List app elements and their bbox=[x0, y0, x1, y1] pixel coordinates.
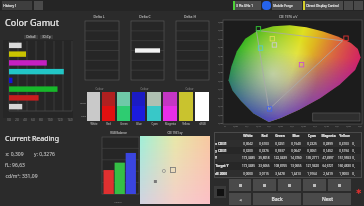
staticText: 0,60 bbox=[218, 20, 223, 23]
staticText: White bbox=[90, 122, 98, 126]
staticText: 0,55 bbox=[218, 28, 223, 31]
staticText: Colour bbox=[95, 87, 104, 91]
staticText: Magenta bbox=[321, 134, 336, 138]
button[interactable]: Tool 0 bbox=[229, 179, 251, 191]
staticText: 0 bbox=[224, 124, 226, 127]
staticText: 1,4413 bbox=[291, 172, 301, 176]
staticText: 0,4103 bbox=[339, 142, 349, 146]
button[interactable]: sRGB bbox=[195, 92, 209, 126]
button[interactable]: Mobile Forge bbox=[272, 1, 302, 10]
staticText: 0,1540 bbox=[291, 142, 301, 146]
staticText: 33,6065 bbox=[258, 164, 270, 168]
staticText: Colour bbox=[140, 87, 149, 91]
staticText: 0,30 bbox=[218, 70, 223, 73]
staticText: Next bbox=[322, 196, 333, 203]
staticText: ◀ bbox=[239, 198, 242, 201]
button[interactable]: Stop bbox=[214, 186, 226, 198]
button[interactable]: Calibrate bbox=[262, 1, 271, 10]
button[interactable]: Blue bbox=[132, 92, 145, 126]
button[interactable]: Tool 3 bbox=[303, 179, 326, 191]
button[interactable]: Next bbox=[303, 193, 351, 205]
staticText: Targ bbox=[81, 114, 86, 117]
button[interactable]: Tool 2 bbox=[278, 179, 301, 191]
staticText: 35,8018 bbox=[258, 156, 270, 160]
staticText: 12.0 bbox=[57, 118, 63, 122]
button[interactable]: Direct Display Control bbox=[303, 1, 343, 10]
staticText: y: 0,3276 bbox=[34, 151, 55, 158]
staticText: 0, bbox=[352, 156, 355, 160]
staticText: 0,1 bbox=[245, 124, 249, 127]
staticText: 0,4 bbox=[313, 124, 317, 127]
staticText: 64,6721 bbox=[322, 164, 334, 168]
staticText: 0,25 bbox=[218, 79, 223, 82]
staticText: 0,3 bbox=[290, 124, 294, 127]
staticText: 0,2325 bbox=[307, 142, 317, 146]
button[interactable]: History 1 bbox=[2, 1, 32, 10]
staticText: 6.0 bbox=[31, 118, 35, 122]
staticText: Delta H bbox=[184, 14, 196, 19]
staticText: Cyan bbox=[308, 134, 316, 138]
button[interactable]: Previous bbox=[229, 193, 251, 205]
staticText: 0,45 bbox=[218, 45, 223, 48]
staticText: 0,3061 bbox=[307, 149, 317, 153]
staticText: Delta C bbox=[139, 14, 151, 19]
button[interactable]: 3 Pts UHz 1 bbox=[233, 1, 261, 10]
staticText: 0,3200 bbox=[243, 149, 253, 153]
staticText: 0,35 bbox=[301, 124, 306, 127]
staticText: CIE 1931 xy bbox=[167, 131, 183, 135]
staticText: 0, bbox=[352, 142, 355, 146]
button[interactable]: Red bbox=[102, 92, 115, 126]
staticText: Green bbox=[120, 122, 128, 126]
staticText: 8.0 bbox=[39, 118, 43, 122]
staticText: 0.0 bbox=[7, 118, 11, 122]
button[interactable]: Tool 1 bbox=[253, 179, 276, 191]
staticText: 0,25 bbox=[278, 124, 283, 127]
staticText: 1,9164 bbox=[307, 172, 317, 176]
button[interactable]: Yellow bbox=[179, 92, 193, 126]
staticText: 0,6103 bbox=[259, 142, 269, 146]
staticText: White bbox=[243, 134, 253, 138]
staticText: 0,05 bbox=[233, 124, 238, 127]
staticText: Target Y bbox=[215, 164, 229, 168]
staticText: 160,4830 bbox=[338, 164, 351, 168]
staticText: ✱ bbox=[356, 188, 362, 196]
staticText: y CIE31 bbox=[215, 149, 227, 153]
staticText: 121,9420 bbox=[306, 164, 319, 168]
staticText: Mobile Forge bbox=[273, 4, 293, 8]
staticText: Delta L bbox=[93, 14, 105, 19]
staticText: x CIE31 bbox=[215, 142, 227, 146]
staticText: Back bbox=[271, 196, 283, 203]
staticText: CIE 1976 u'v' bbox=[279, 15, 298, 19]
staticText: Red bbox=[261, 134, 268, 138]
staticText: 0,3042 bbox=[243, 142, 253, 146]
staticText: 3 Pts UHz 1 bbox=[236, 4, 253, 8]
staticText: 0,15 bbox=[256, 124, 261, 127]
button[interactable]: Magenta bbox=[163, 92, 177, 126]
staticText: RGB Balance bbox=[110, 131, 127, 135]
staticText: Current Reading bbox=[5, 134, 59, 144]
staticText: Magenta bbox=[165, 122, 176, 126]
staticText: 0,10 bbox=[218, 104, 223, 107]
staticText: 0,35 bbox=[218, 62, 223, 65]
staticText: 0, bbox=[352, 164, 355, 168]
staticText: cd/m²: 331,09 bbox=[5, 173, 38, 180]
staticText: 2,5419 bbox=[323, 172, 333, 176]
button[interactable]: White bbox=[87, 92, 100, 126]
button[interactable]: Back bbox=[253, 193, 301, 205]
staticText: Colour bbox=[114, 200, 122, 203]
staticText: 0,5 bbox=[335, 124, 339, 127]
staticText: 173,3485 bbox=[242, 164, 255, 168]
button[interactable]: Cyan bbox=[147, 92, 161, 126]
staticText: 10.0 bbox=[47, 118, 53, 122]
button[interactable]: Green bbox=[117, 92, 130, 126]
staticText: 122,0439 bbox=[274, 156, 287, 160]
staticText: 0,2899 bbox=[323, 142, 333, 146]
staticText: Yellow bbox=[182, 122, 190, 126]
staticText: 1,9003 bbox=[339, 172, 349, 176]
button[interactable]: Tool 4 bbox=[328, 179, 351, 191]
staticText: x: 0,309 bbox=[5, 151, 24, 158]
staticText: 0,3376 bbox=[259, 149, 269, 153]
